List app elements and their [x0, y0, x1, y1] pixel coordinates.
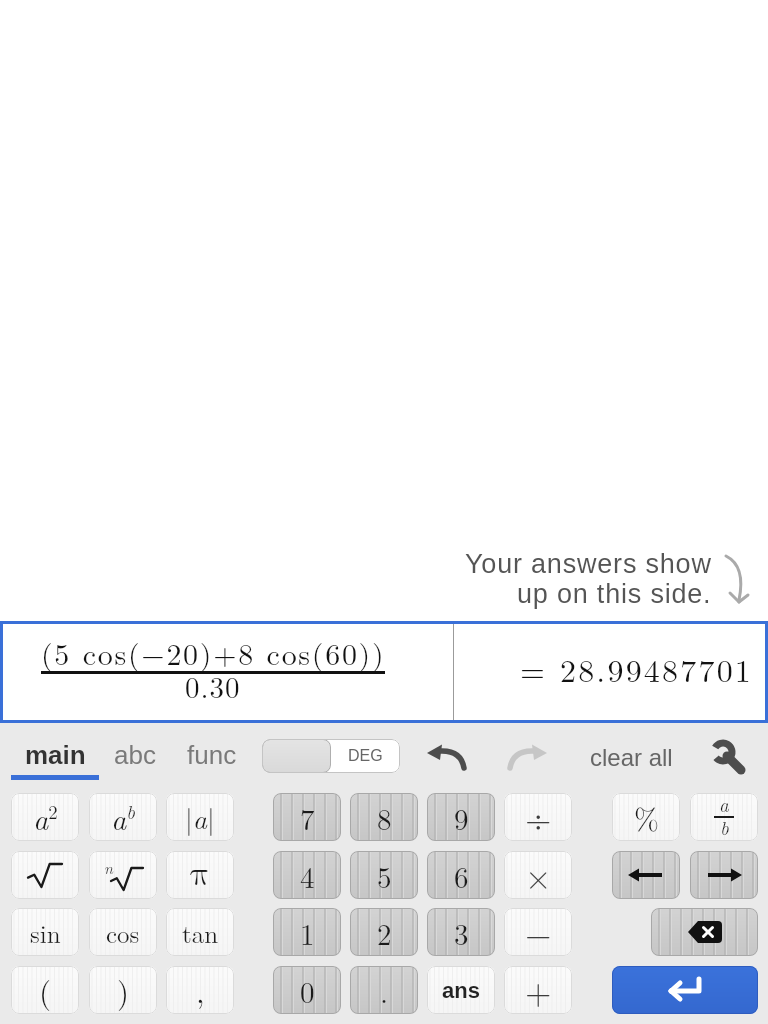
- staticText: 5: [377, 855, 392, 896]
- staticText: main: [25, 740, 86, 769]
- button[interactable]: 8: [350, 793, 418, 841]
- button[interactable]: n: [89, 851, 157, 899]
- button[interactable]: .: [350, 966, 418, 1014]
- button[interactable]: 1: [273, 908, 341, 956]
- button[interactable]: [0, 621, 768, 723]
- staticText: ans: [442, 978, 480, 1003]
- staticText: ,: [196, 968, 205, 1012]
- staticText: 9: [454, 797, 469, 838]
- button[interactable]: 5: [350, 851, 418, 899]
- button[interactable]: |a|: [166, 793, 234, 841]
- button[interactable]: a: [690, 793, 758, 841]
- button[interactable]: a2: [11, 793, 79, 841]
- button[interactable]: [711, 742, 747, 776]
- staticText: sin: [30, 915, 61, 950]
- button[interactable]: func: [175, 733, 249, 775]
- staticText: = 28.99487701: [520, 646, 754, 691]
- staticText: .: [380, 970, 389, 1011]
- staticText: a: [719, 793, 729, 818]
- button[interactable]: −: [504, 908, 572, 956]
- button[interactable]: ab: [89, 793, 157, 841]
- button[interactable]: [612, 851, 680, 899]
- staticText: (5 cos(−20)+8 cos(60)): [41, 631, 386, 674]
- staticText: n: [104, 856, 113, 879]
- button[interactable]: [612, 966, 758, 1014]
- button[interactable]: +: [504, 966, 572, 1014]
- button[interactable]: sin: [11, 908, 79, 956]
- button[interactable]: 3: [427, 908, 495, 956]
- button[interactable]: [11, 851, 79, 899]
- button[interactable]: [505, 743, 547, 771]
- staticText: a2: [33, 796, 58, 838]
- staticText: 1: [300, 912, 315, 953]
- button[interactable]: 9: [427, 793, 495, 841]
- button[interactable]: ): [89, 966, 157, 1014]
- button[interactable]: DEG: [262, 739, 400, 773]
- button[interactable]: main: [11, 733, 99, 775]
- staticText: ): [117, 968, 130, 1012]
- staticText: DEG: [348, 747, 383, 765]
- button[interactable]: abc: [103, 733, 167, 775]
- button[interactable]: π: [166, 851, 234, 899]
- staticText: up on this side.: [517, 579, 712, 609]
- staticText: 0.30: [185, 665, 241, 706]
- button[interactable]: 2: [350, 908, 418, 956]
- button[interactable]: tan: [166, 908, 234, 956]
- staticText: cos: [106, 915, 140, 950]
- button[interactable]: ans: [427, 966, 495, 1014]
- button[interactable]: [427, 743, 469, 771]
- staticText: 8: [377, 797, 392, 838]
- button[interactable]: ×: [504, 851, 572, 899]
- staticText: π: [190, 858, 210, 892]
- button[interactable]: 6: [427, 851, 495, 899]
- button[interactable]: 0: [273, 966, 341, 1014]
- staticText: 7: [300, 797, 315, 838]
- staticText: b: [720, 814, 729, 841]
- staticText: 3: [454, 912, 469, 953]
- button[interactable]: clear all: [572, 735, 690, 779]
- button[interactable]: ÷: [504, 793, 572, 841]
- staticText: 4: [300, 855, 315, 896]
- staticText: 2: [377, 912, 392, 953]
- staticText: ÷: [525, 793, 552, 841]
- staticText: 6: [454, 855, 469, 896]
- button[interactable]: [690, 851, 758, 899]
- staticText: ×: [525, 851, 552, 899]
- button[interactable]: %: [612, 793, 680, 841]
- staticText: 0: [300, 970, 315, 1011]
- button[interactable]: 4: [273, 851, 341, 899]
- staticText: %: [634, 796, 659, 839]
- staticText: ab: [111, 796, 136, 838]
- staticText: clear all: [590, 744, 673, 771]
- button[interactable]: 7: [273, 793, 341, 841]
- staticText: abc: [114, 740, 156, 769]
- button[interactable]: [651, 908, 758, 956]
- button[interactable]: ,: [166, 966, 234, 1014]
- staticText: (: [39, 968, 52, 1012]
- button[interactable]: (: [11, 966, 79, 1014]
- staticText: tan: [182, 915, 219, 950]
- staticText: Your answers show: [465, 549, 712, 579]
- staticText: func: [187, 740, 237, 769]
- staticText: |a|: [185, 797, 215, 837]
- staticText: +: [525, 966, 552, 1014]
- staticText: −: [525, 908, 552, 956]
- button[interactable]: cos: [89, 908, 157, 956]
